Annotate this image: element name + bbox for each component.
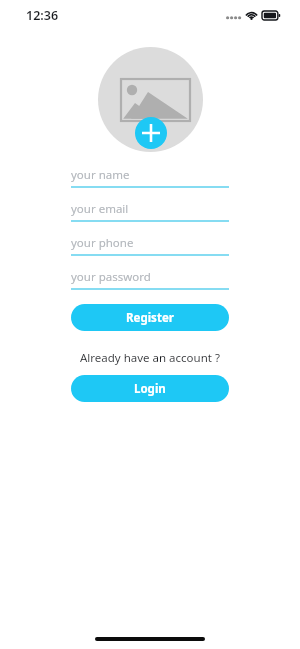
button[interactable]: your email	[71, 198, 229, 222]
button[interactable]: your password	[71, 266, 229, 290]
button[interactable]: your name	[71, 164, 229, 188]
staticText: Already have an account ?	[80, 350, 220, 366]
staticText: your email	[71, 201, 129, 217]
button[interactable]: Register	[71, 304, 229, 331]
staticText: Login	[134, 381, 166, 397]
staticText: 12:36	[26, 7, 59, 24]
staticText: your password	[71, 269, 151, 285]
button[interactable]: Add profile photo	[98, 47, 203, 152]
button[interactable]: your phone	[71, 232, 229, 256]
button[interactable]: Login	[71, 375, 229, 402]
staticText: your name	[71, 167, 130, 183]
staticText: Register	[126, 310, 174, 326]
staticText: your phone	[71, 235, 134, 251]
